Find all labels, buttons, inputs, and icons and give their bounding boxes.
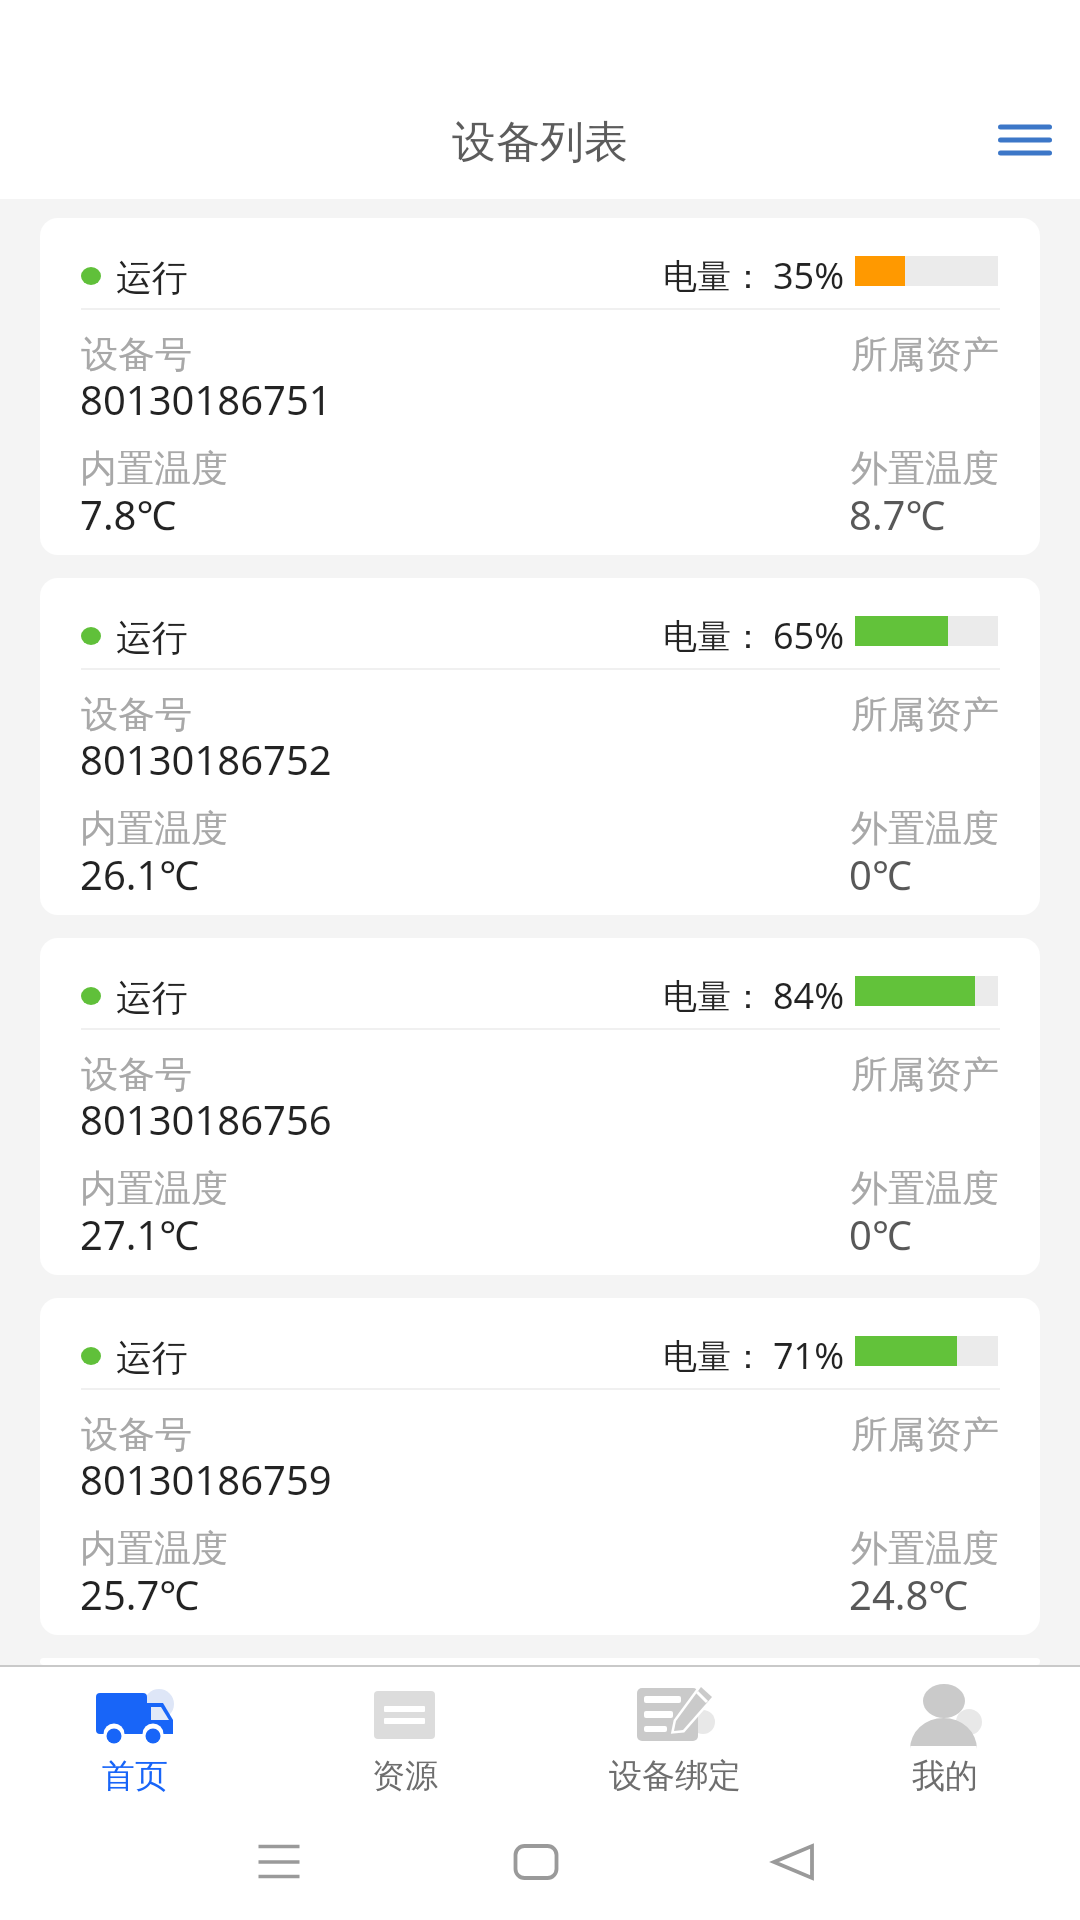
staticText: 我的 [912,1755,978,1797]
staticText: 外置温度 [851,1165,999,1212]
staticText: 内置温度 [80,1165,228,1212]
staticText: 65% [773,611,845,660]
staticText: 27.1℃ [80,1207,200,1261]
staticText: 运行 [116,975,188,1020]
staticText: 84% [773,971,845,1020]
staticText: 设备号 [81,1051,192,1098]
button[interactable]: Home [495,1821,577,1903]
staticText: 7.8℃ [80,487,177,541]
staticText: 8.7℃ [849,487,946,541]
button[interactable]: 运行 [40,218,1040,555]
button[interactable]: Recent apps [238,1821,320,1903]
staticText: 80130186759 [80,1452,332,1506]
staticText: 内置温度 [80,445,228,492]
button[interactable]: Back [752,1821,834,1903]
staticText: 35% [773,251,845,300]
staticText: 0℃ [849,847,912,901]
staticText: 外置温度 [851,805,999,852]
staticText: 所属资产 [851,331,999,378]
staticText: 运行 [116,1335,188,1380]
button[interactable]: 首页 [0,1667,270,1798]
button[interactable]: 运行 [40,1298,1040,1635]
staticText: 电量： [663,255,765,298]
staticText: 内置温度 [80,805,228,852]
button[interactable]: 运行 [40,938,1040,1275]
staticText: 电量： [663,975,765,1018]
staticText: 设备号 [81,1411,192,1458]
staticText: 电量： [663,1335,765,1378]
staticText: 所属资产 [851,1051,999,1098]
staticText: 电量： [663,615,765,658]
staticText: 80130186751 [80,372,332,426]
staticText: 首页 [102,1755,168,1797]
button[interactable]: 我的 [810,1667,1080,1798]
staticText: 资源 [372,1755,438,1797]
staticText: 内置温度 [80,1525,228,1572]
staticText: 24.8℃ [849,1567,969,1621]
staticText: 设备列表 [452,115,628,170]
staticText: 0℃ [849,1207,912,1261]
staticText: 所属资产 [851,691,999,738]
staticText: 26.1℃ [80,847,200,901]
staticText: 25.7℃ [80,1567,200,1621]
staticText: 80130186752 [80,732,332,786]
staticText: 设备号 [81,331,192,378]
staticText: 运行 [116,615,188,660]
staticText: 设备绑定 [609,1755,741,1797]
staticText: 外置温度 [851,1525,999,1572]
button[interactable]: 运行 [40,578,1040,915]
button[interactable]: 资源 [270,1667,540,1798]
staticText: 运行 [116,255,188,300]
staticText: 所属资产 [851,1411,999,1458]
staticText: 外置温度 [851,445,999,492]
button[interactable]: Menu [993,110,1057,170]
staticText: 80130186756 [80,1092,332,1146]
staticText: 71% [773,1331,845,1380]
button[interactable]: 设备绑定 [540,1667,810,1798]
staticText: 设备号 [81,691,192,738]
